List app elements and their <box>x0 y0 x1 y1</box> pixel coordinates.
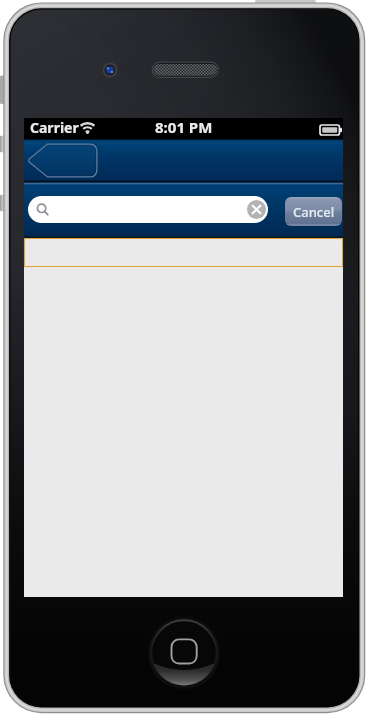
button[interactable]: Cancel <box>285 197 342 226</box>
staticText: Cancel <box>293 203 335 221</box>
staticText: 8:01 PM <box>155 117 213 137</box>
button[interactable]: Clear text <box>28 196 268 223</box>
button[interactable]: Back <box>27 143 98 178</box>
staticText: Carrier <box>30 118 79 137</box>
button[interactable]: Clear text <box>247 200 266 219</box>
